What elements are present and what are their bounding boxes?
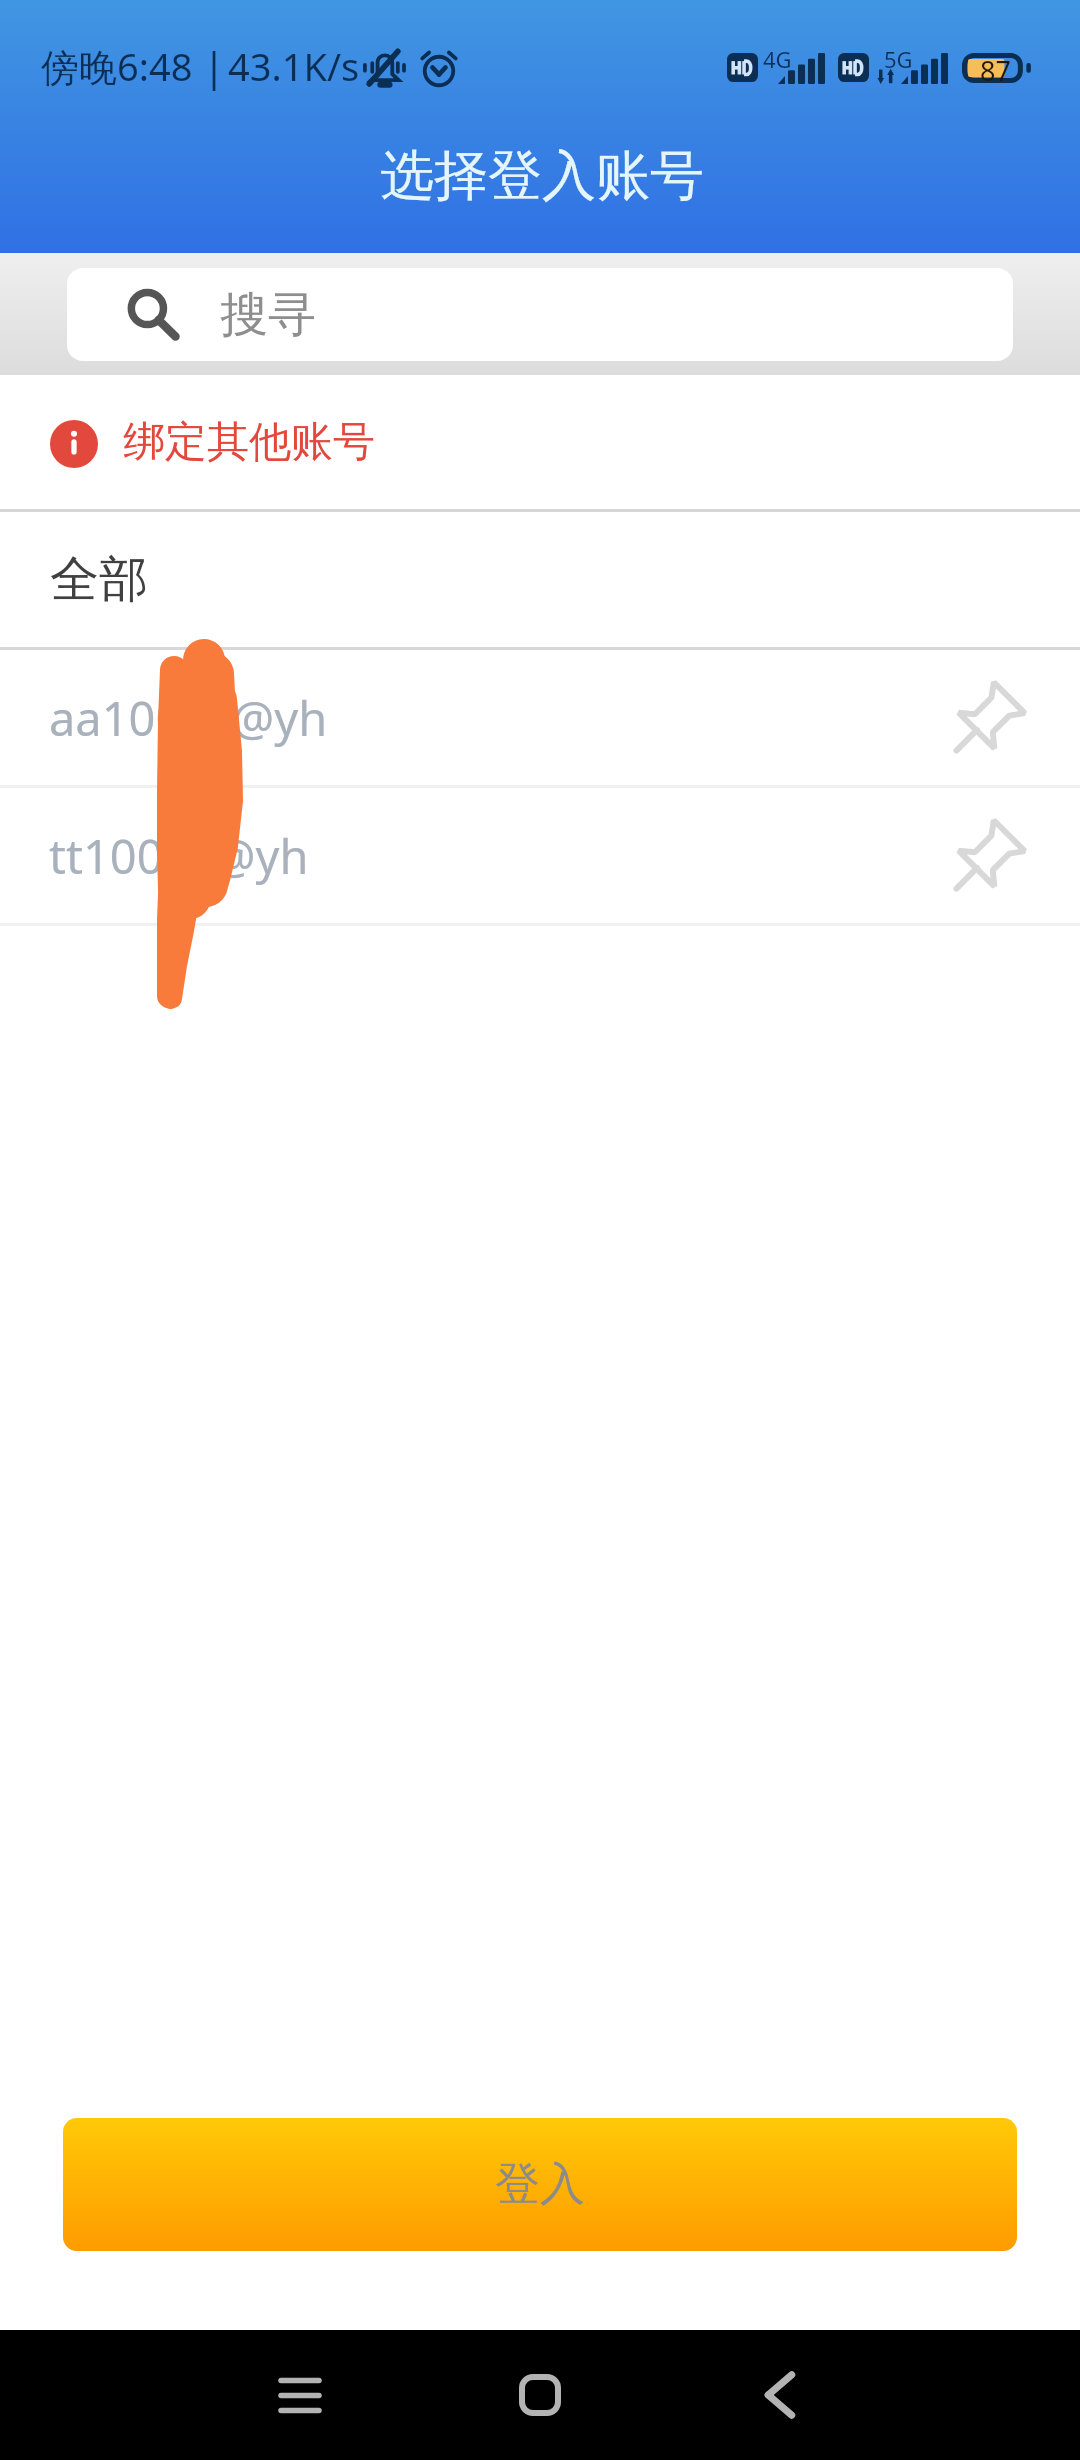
- staticText: |: [203, 38, 226, 92]
- staticText: aa100xx@yh: [49, 686, 328, 750]
- button[interactable]: Back: [735, 2350, 825, 2440]
- button[interactable]: tt100xx@yh: [0, 788, 1080, 923]
- staticText: 选择登入账号: [380, 142, 704, 210]
- button[interactable]: Pin account: [928, 801, 1038, 911]
- staticText: 傍晚6:48: [41, 40, 193, 92]
- button[interactable]: Recent apps: [255, 2350, 345, 2440]
- button[interactable]: 全部: [0, 512, 1080, 647]
- button[interactable]: 绑定其他账号: [0, 375, 1080, 509]
- staticText: 4G: [763, 44, 792, 74]
- staticText: 绑定其他账号: [123, 416, 375, 469]
- button[interactable]: 登入: [63, 2118, 1017, 2251]
- staticText: 全部: [50, 549, 148, 611]
- staticText: 搜寻: [220, 285, 316, 345]
- button[interactable]: Pin account: [928, 663, 1038, 773]
- staticText: 登入: [495, 2156, 585, 2213]
- staticText: 87: [980, 52, 1011, 89]
- button[interactable]: 搜寻: [67, 268, 1013, 361]
- staticText: 5G: [884, 44, 913, 74]
- button[interactable]: Home: [495, 2350, 585, 2440]
- staticText: 43.1K/s: [228, 40, 360, 92]
- staticText: tt100xx@yh: [49, 824, 309, 888]
- button[interactable]: aa100xx@yh: [0, 650, 1080, 785]
